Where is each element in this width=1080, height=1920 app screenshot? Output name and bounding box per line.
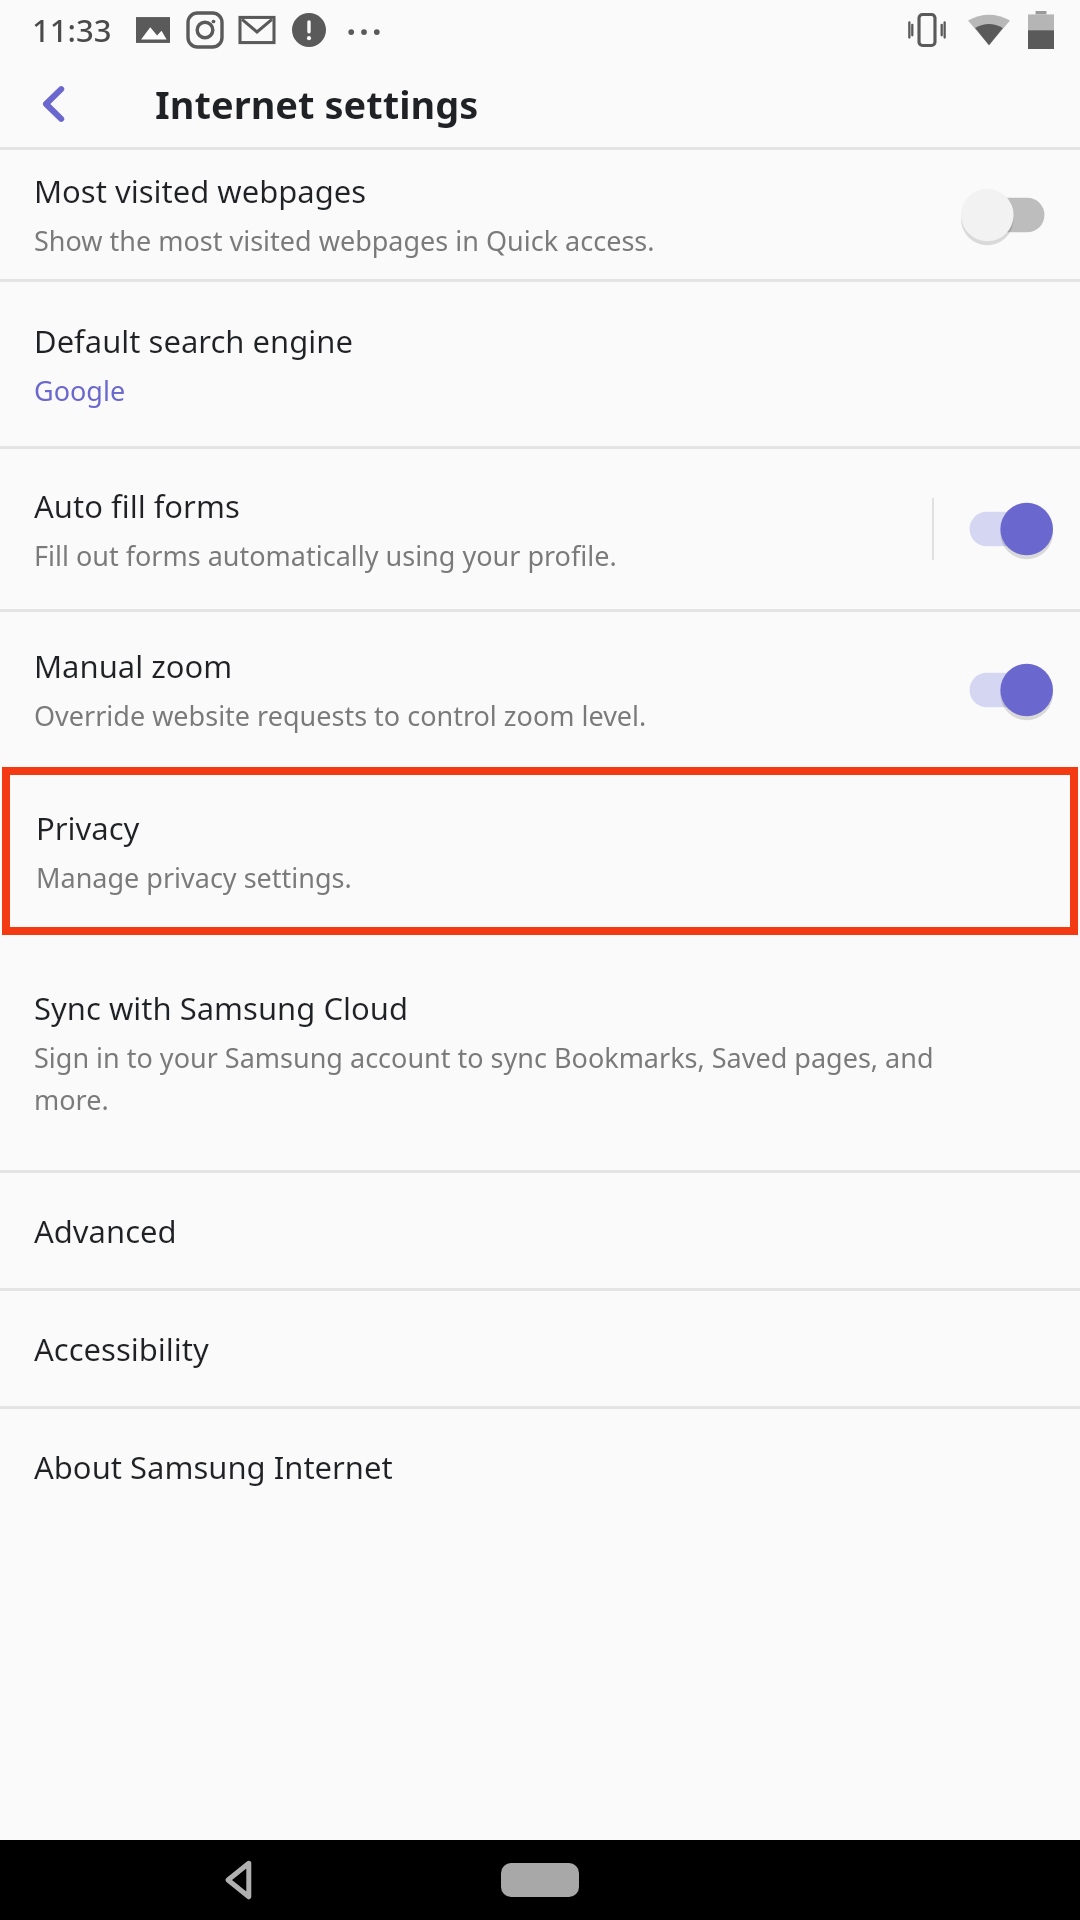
button[interactable]: Most visited webpages: [0, 150, 1080, 279]
button[interactable]: Manual zoom: [934, 612, 1080, 767]
staticText: Override website requests to control zoo…: [34, 697, 647, 734]
staticText: Sign in to your Samsung account to sync …: [34, 1039, 960, 1118]
button[interactable]: Default search engine: [0, 282, 1080, 446]
staticText: Accessibility: [34, 1328, 209, 1370]
button[interactable]: Auto fill forms: [0, 449, 1080, 609]
button[interactable]: Privacy: [2, 767, 1078, 935]
button[interactable]: Back: [18, 68, 90, 140]
button[interactable]: Most visited webpages: [934, 150, 1080, 279]
button[interactable]: Manual zoom: [0, 612, 1080, 767]
button[interactable]: Accessibility: [0, 1291, 1080, 1406]
button[interactable]: About Samsung Internet: [0, 1409, 1080, 1524]
staticText: Manage privacy settings.: [36, 859, 352, 896]
staticText: Auto fill forms: [34, 485, 240, 527]
staticText: Internet settings: [155, 78, 479, 130]
staticText: Manual zoom: [34, 645, 233, 687]
staticText: Privacy: [36, 807, 140, 849]
staticText: Most visited webpages: [34, 170, 367, 212]
staticText: About Samsung Internet: [34, 1446, 393, 1488]
button[interactable]: Advanced: [0, 1173, 1080, 1288]
staticText: Fill out forms automatically using your …: [34, 537, 617, 574]
button[interactable]: Home: [480, 1845, 600, 1915]
staticText: Default search engine: [34, 320, 353, 362]
staticText: 11:33: [32, 9, 112, 51]
button[interactable]: Sync with Samsung Cloud: [0, 935, 1080, 1170]
staticText: Show the most visited webpages in Quick …: [34, 222, 655, 259]
staticText: Google: [34, 372, 126, 409]
staticText: Advanced: [34, 1210, 177, 1252]
staticText: Sync with Samsung Cloud: [34, 987, 408, 1029]
button[interactable]: Auto fill forms: [934, 449, 1080, 609]
button[interactable]: Back: [190, 1840, 290, 1920]
